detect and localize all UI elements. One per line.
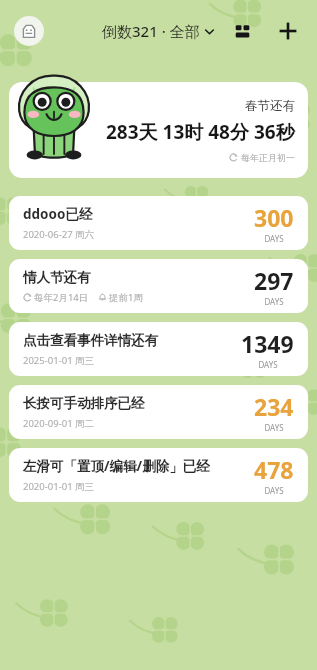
staticText: DAYS (264, 296, 284, 307)
button[interactable]: 倒数321 · 全部 (102, 21, 215, 41)
button[interactable]: Layout (225, 14, 259, 48)
staticText: DAYS (264, 233, 284, 244)
staticText: 长按可手动排序已经 (23, 395, 145, 412)
button[interactable]: ddooo已经 (9, 196, 308, 250)
staticText: DAYS (264, 485, 284, 496)
staticText: 春节还有 (245, 98, 295, 114)
staticText: 283天 13时 48分 36秒 (106, 119, 295, 145)
button[interactable]: 春节还有 (9, 82, 308, 178)
staticText: 提前1周 (109, 291, 143, 304)
staticText: 左滑可「置顶/编辑/删除」已经 (23, 457, 210, 475)
button[interactable]: 情人节还有 (9, 259, 308, 313)
staticText: DAYS (264, 422, 284, 433)
staticText: 情人节还有 (23, 269, 91, 286)
button[interactable]: Add (271, 14, 305, 48)
staticText: ddooo已经 (23, 205, 93, 223)
staticText: 点击查看事件详情还有 (23, 332, 158, 349)
button[interactable]: Profile (14, 16, 44, 46)
staticText: 2020-09-01 周二 (23, 417, 95, 430)
staticText: 478 (254, 454, 294, 485)
staticText: 每年正月初一 (241, 152, 295, 163)
staticText: 2020-06-27 周六 (23, 228, 95, 241)
button[interactable]: 左滑可「置顶/编辑/删除」已经 (9, 448, 308, 502)
staticText: 倒数321 · 全部 (102, 21, 200, 41)
staticText: DAYS (258, 359, 278, 370)
staticText: 297 (254, 265, 294, 296)
staticText: 每年2月14日 (34, 291, 89, 304)
staticText: 2025-01-01 周三 (23, 354, 95, 367)
button[interactable]: 点击查看事件详情还有 (9, 322, 308, 376)
staticText: 300 (254, 202, 294, 233)
staticText: 234 (254, 391, 294, 422)
staticText: 2020-01-01 周三 (23, 480, 95, 493)
button[interactable]: 长按可手动排序已经 (9, 385, 308, 439)
staticText: 1349 (241, 328, 294, 359)
